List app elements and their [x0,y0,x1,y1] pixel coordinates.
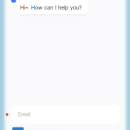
button[interactable]: Email [11,105,120,124]
staticText: Email [18,111,30,117]
button[interactable]: Continue [12,127,24,130]
staticText: Hi~ How can I help you? [20,4,82,11]
button[interactable]: Previous action [11,0,17,3]
